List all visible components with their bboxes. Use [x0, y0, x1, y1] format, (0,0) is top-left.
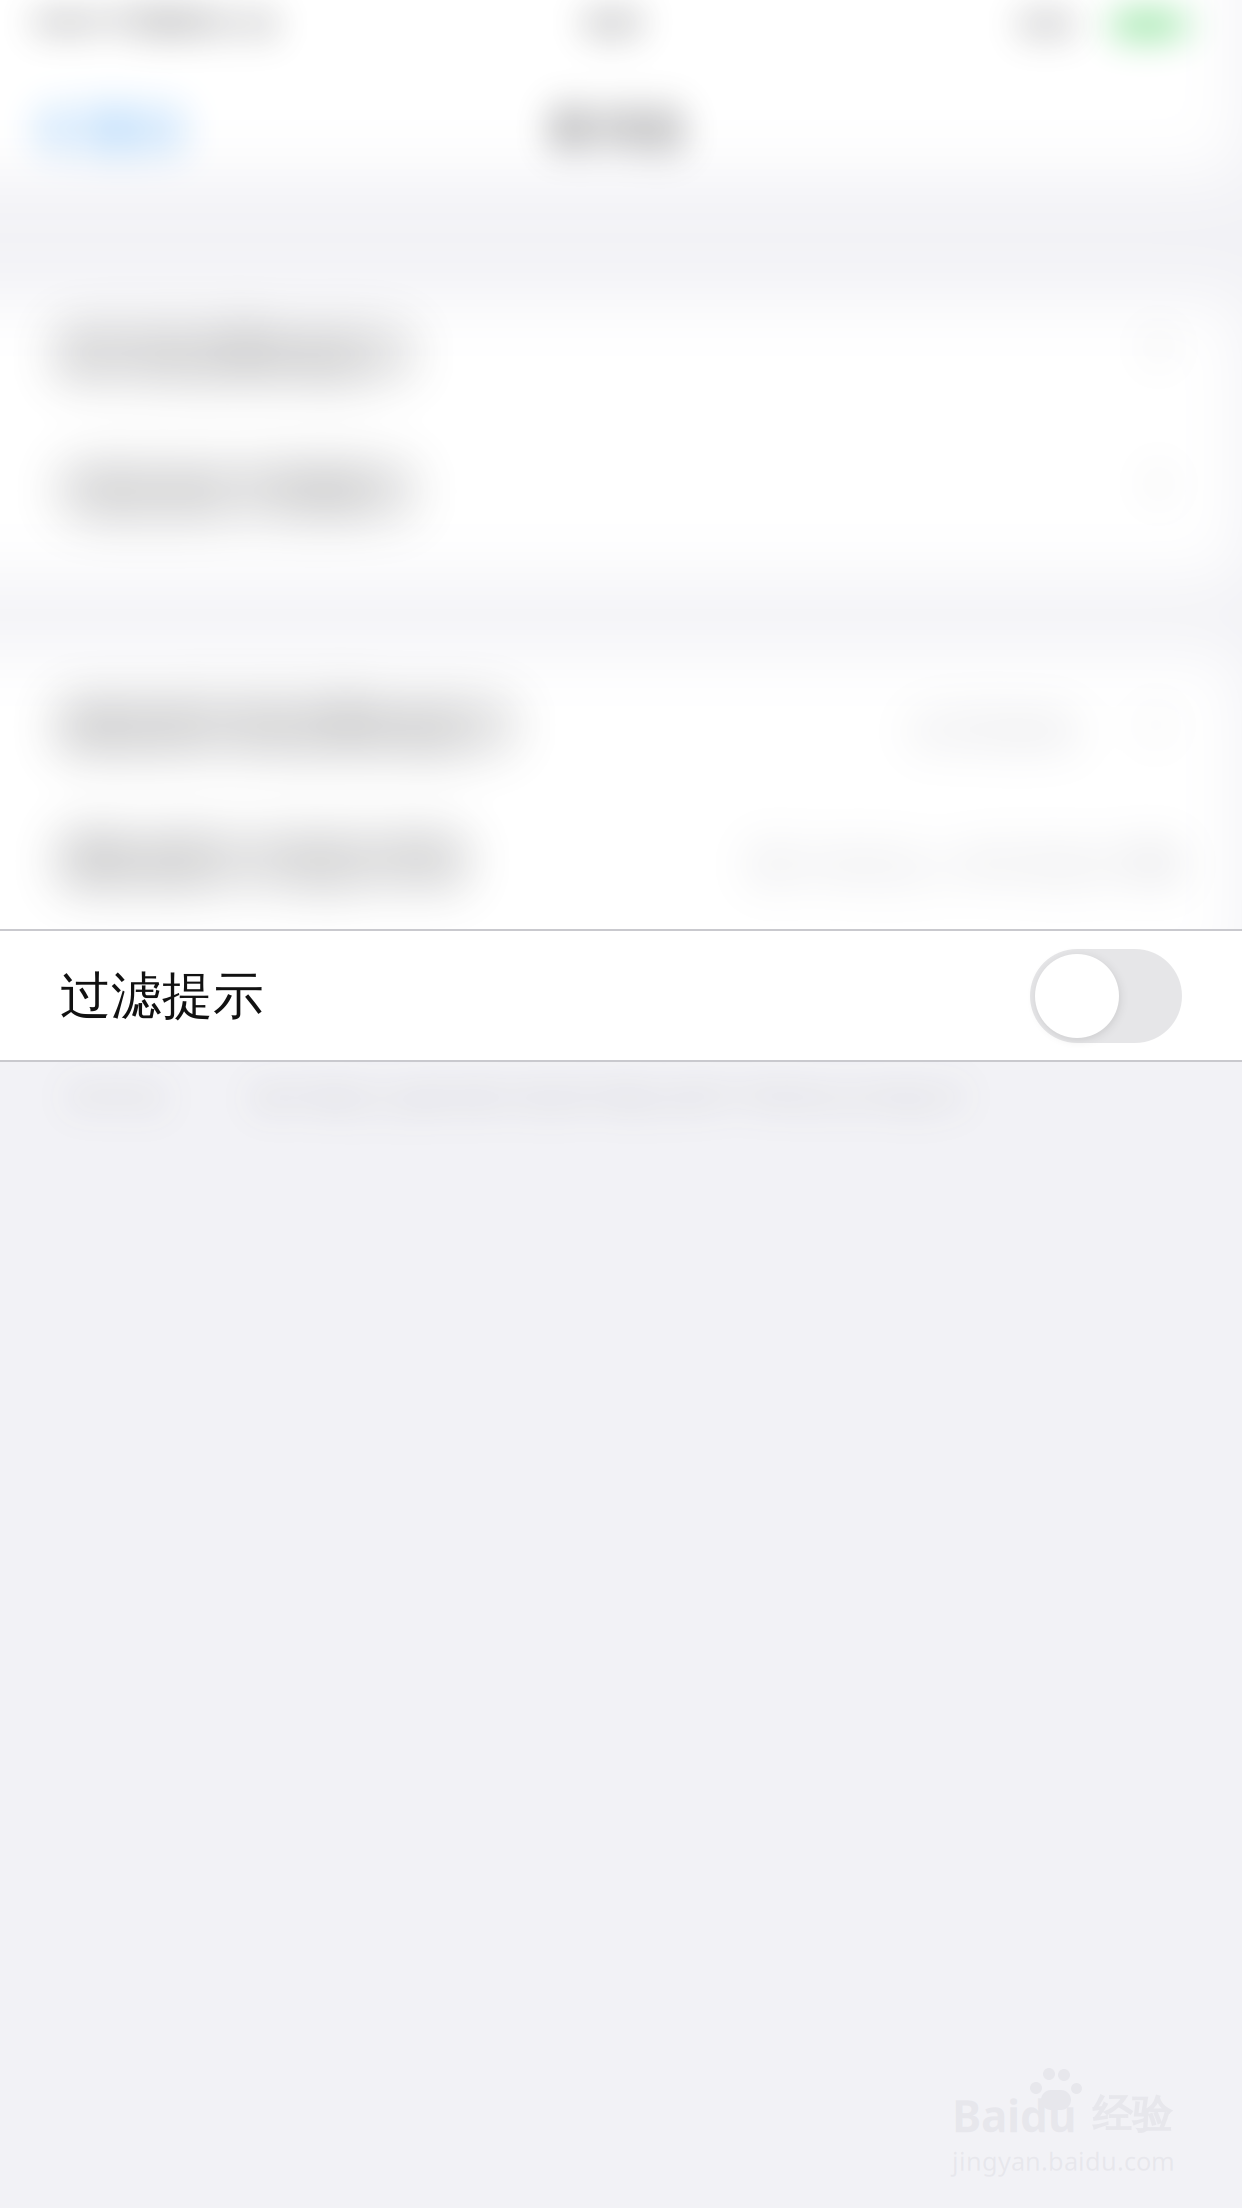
button[interactable]: 消息免打扰 [0, 440, 1242, 580]
staticText: 过滤提示 [60, 965, 264, 1027]
button[interactable]: 过滤提示 [0, 929, 1242, 1062]
button[interactable]: Back [16, 84, 246, 176]
button[interactable]: 通知显示消息详情 [0, 790, 1242, 929]
button[interactable]: 接收新消息通知 [0, 650, 1242, 790]
staticText: Baidu [952, 2086, 1077, 2144]
button[interactable]: 新消息通知 [0, 300, 1242, 440]
staticText: jingyan.baidu.com [952, 2144, 1175, 2178]
staticText: 经验 [1092, 2090, 1172, 2139]
